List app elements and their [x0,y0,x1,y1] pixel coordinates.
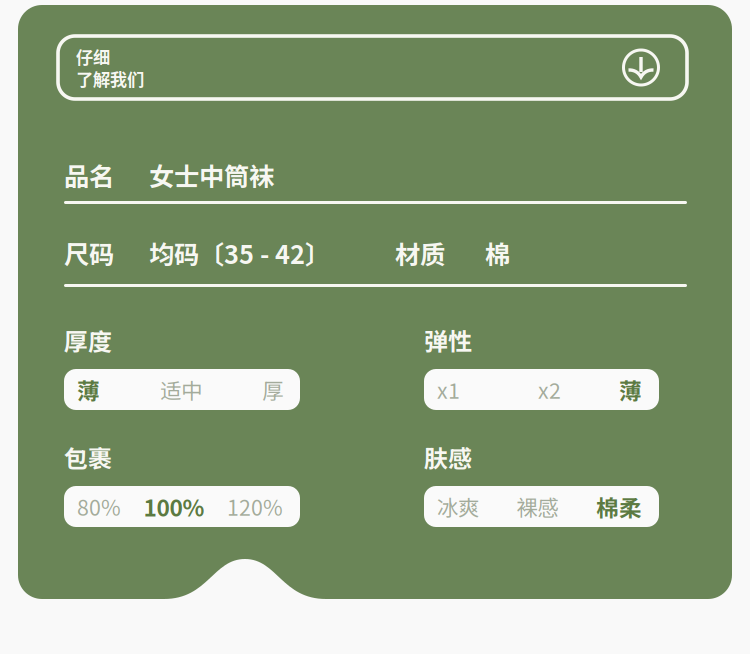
button[interactable]: 仔细 [58,36,687,99]
staticText: 棉柔 [596,490,642,523]
button[interactable]: 100% [143,486,204,527]
staticText: 80% [77,491,121,522]
staticText: 100% [143,490,204,523]
staticText: 冰爽 [437,491,479,522]
staticText: 棉 [485,235,510,271]
button[interactable]: x1 [437,369,460,410]
staticText: 仔细 [76,44,110,69]
button[interactable]: 棉柔 [596,486,642,527]
button[interactable]: 80% [77,486,121,527]
staticText: 厚 [262,374,283,405]
staticText: 薄 [619,373,642,406]
button[interactable]: 厚 [262,369,283,410]
staticText: 包裹 [64,440,112,474]
button[interactable]: 薄 [77,369,100,410]
staticText: 品名 [64,157,114,193]
button[interactable]: 适中 [160,369,202,410]
staticText: x2 [538,374,561,405]
button[interactable]: 薄 [619,369,642,410]
button[interactable]: 冰爽 [437,486,479,527]
staticText: 120% [227,491,283,522]
staticText: 材质 [395,235,445,271]
staticText: 了解我们 [76,66,144,91]
staticText: 均码〔35 - 42〕 [149,235,330,271]
staticText: x1 [437,374,460,405]
staticText: 肤感 [424,440,472,474]
staticText: 弹性 [424,323,472,357]
staticText: 尺码 [64,235,114,271]
staticText: 薄 [77,373,100,406]
button[interactable]: x2 [538,369,561,410]
button[interactable]: 裸感 [516,486,558,527]
staticText: 厚度 [64,323,112,357]
staticText: 女士中筒袜 [149,157,274,193]
staticText: 适中 [160,374,202,405]
button[interactable]: 120% [227,486,283,527]
staticText: 裸感 [516,491,558,522]
